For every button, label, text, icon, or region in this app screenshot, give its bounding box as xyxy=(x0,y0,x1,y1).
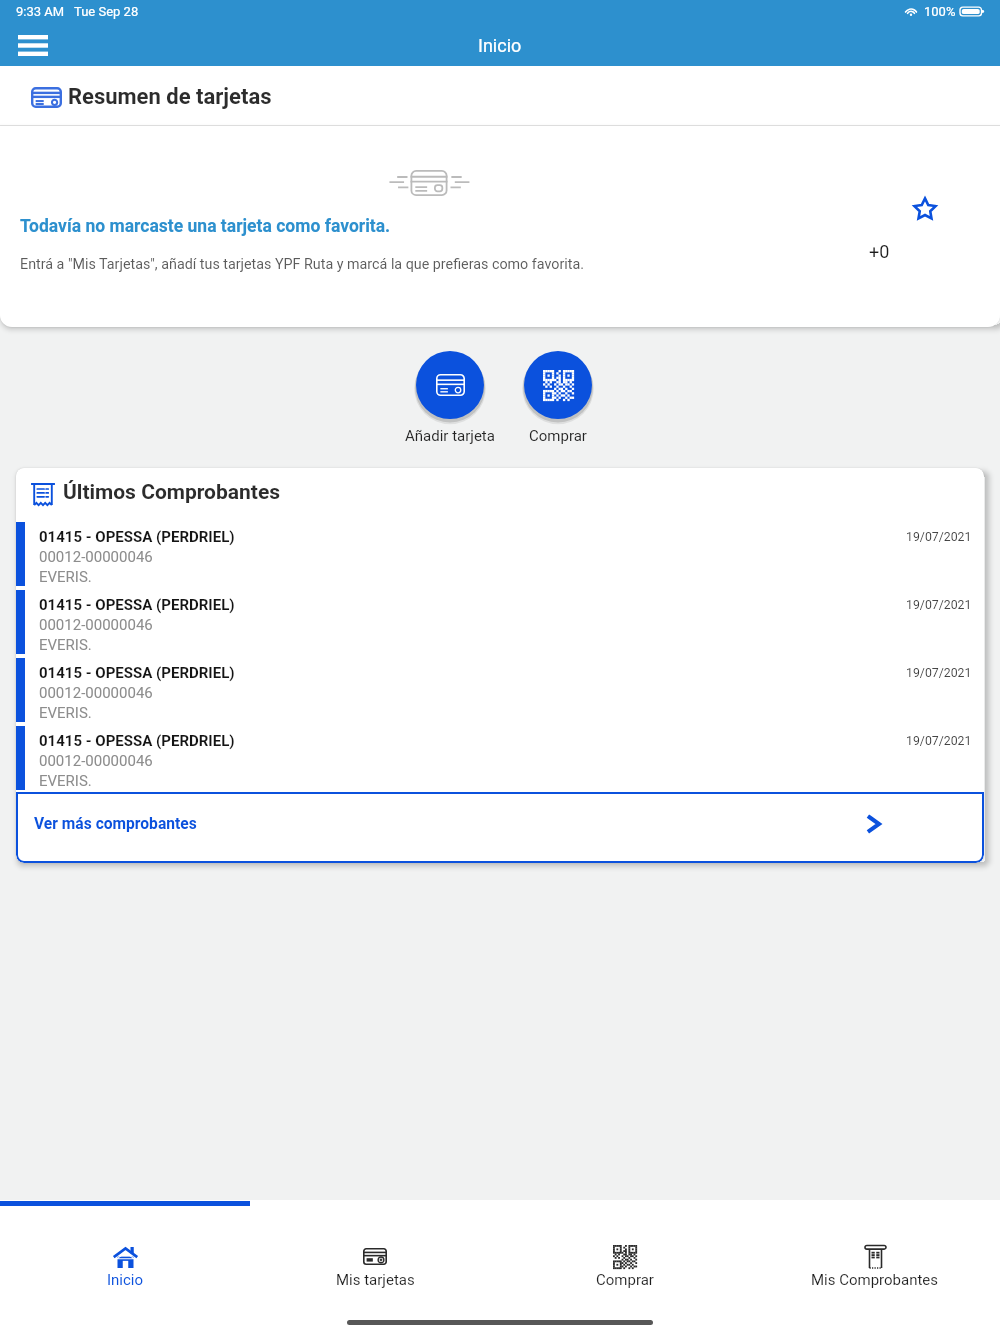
staticText: 9:33 AM xyxy=(16,4,65,19)
staticText: 19/07/2021 xyxy=(906,530,972,544)
button[interactable]: 01415 - OPESSA (PERDRIEL) xyxy=(16,656,984,724)
staticText: Comprar xyxy=(596,1271,654,1289)
staticText: 00012-00000046 xyxy=(39,616,153,634)
staticText: 19/07/2021 xyxy=(906,734,972,748)
button[interactable]: 01415 - OPESSA (PERDRIEL) xyxy=(16,724,984,792)
staticText: Resumen de tarjetas xyxy=(68,84,272,110)
staticText: EVERIS. xyxy=(39,772,92,790)
staticText: Comprar xyxy=(529,427,587,445)
button[interactable]: Todavía no marcaste una tarjeta como fav… xyxy=(0,126,1000,327)
button[interactable]: Mis Comprobantes xyxy=(750,1206,1000,1310)
staticText: EVERIS. xyxy=(39,568,92,586)
staticText: Mis Comprobantes xyxy=(811,1271,939,1289)
staticText: Ver más comprobantes xyxy=(34,815,197,833)
button[interactable]: Open navigation menu xyxy=(4,24,62,66)
staticText: Mis tarjetas xyxy=(336,1271,415,1289)
staticText: 00012-00000046 xyxy=(39,752,153,770)
staticText: 00012-00000046 xyxy=(39,684,153,702)
staticText: 01415 - OPESSA (PERDRIEL) xyxy=(39,528,235,546)
staticText: Entrá a "Mis Tarjetas", añadí tus tarjet… xyxy=(20,256,584,273)
button[interactable]: 01415 - OPESSA (PERDRIEL) xyxy=(16,588,984,656)
staticText: 19/07/2021 xyxy=(906,666,972,680)
button[interactable]: Comprar xyxy=(500,1206,750,1310)
staticText: 100% xyxy=(924,4,956,19)
button[interactable]: Mis tarjetas xyxy=(250,1206,500,1310)
staticText: Todavía no marcaste una tarjeta como fav… xyxy=(20,216,391,237)
button[interactable]: Añadir tarjeta xyxy=(386,349,514,421)
button[interactable]: Comprar xyxy=(494,349,622,421)
staticText: Tue Sep 28 xyxy=(74,4,139,19)
staticText: EVERIS. xyxy=(39,704,92,722)
staticText: Inicio xyxy=(107,1271,144,1289)
staticText: 19/07/2021 xyxy=(906,598,972,612)
button[interactable]: 01415 - OPESSA (PERDRIEL) xyxy=(16,520,984,588)
staticText: 00012-00000046 xyxy=(39,548,153,566)
staticText: 01415 - OPESSA (PERDRIEL) xyxy=(39,664,235,682)
staticText: Añadir tarjeta xyxy=(405,427,495,445)
staticText: EVERIS. xyxy=(39,636,92,654)
button[interactable]: Ver más comprobantes xyxy=(16,792,984,863)
staticText: +0 xyxy=(869,241,890,262)
staticText: 01415 - OPESSA (PERDRIEL) xyxy=(39,596,235,614)
staticText: 01415 - OPESSA (PERDRIEL) xyxy=(39,732,235,750)
button[interactable]: Inicio xyxy=(0,1206,250,1310)
staticText: Últimos Comprobantes xyxy=(63,480,281,505)
staticText: Inicio xyxy=(478,35,522,56)
